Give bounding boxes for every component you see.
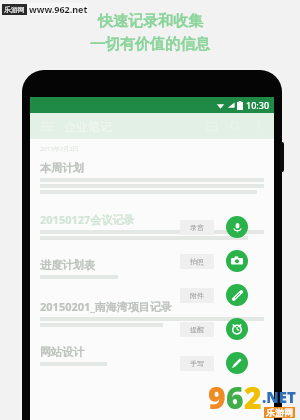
- staticText: 2: [244, 377, 262, 418]
- other: Reminder: [226, 318, 248, 340]
- staticText: 20150201_南海湾项目记录: [40, 299, 172, 314]
- staticText: 乐游网: [4, 5, 25, 14]
- staticText: 企业笔记: [64, 119, 112, 134]
- staticText: 乐游网: [266, 407, 293, 418]
- staticText: 进度计划表: [40, 258, 95, 272]
- button[interactable]: 手写: [180, 348, 248, 378]
- button[interactable]: 附件: [180, 280, 248, 310]
- staticText: 录音: [190, 223, 204, 232]
- button[interactable]: 提醒: [180, 314, 248, 344]
- other: Take photo: [226, 250, 248, 272]
- staticText: 6: [226, 377, 244, 418]
- staticText: 20150127会议记录: [40, 212, 135, 227]
- button[interactable]: 录音: [180, 212, 248, 242]
- staticText: .NET: [262, 387, 296, 407]
- staticText: 本周计划: [40, 161, 84, 175]
- staticText: 一切有价值的信息: [90, 35, 210, 54]
- other: Record audio: [226, 216, 248, 238]
- staticText: 10:30: [246, 99, 270, 111]
- staticText: 快速记录和收集: [98, 12, 203, 31]
- staticText: 网站设计: [40, 345, 84, 359]
- staticText: 手写: [190, 359, 204, 368]
- staticText: www.962.net: [29, 3, 88, 15]
- button[interactable]: 拍照: [180, 246, 248, 276]
- staticText: 提醒: [190, 325, 204, 334]
- staticText: 2015年2月2日: [40, 145, 79, 153]
- staticText: 9: [208, 377, 226, 418]
- other: Attach file: [226, 284, 248, 306]
- staticText: 附件: [190, 291, 204, 300]
- staticText: 拍照: [190, 257, 204, 266]
- other: Handwrite: [226, 352, 248, 374]
